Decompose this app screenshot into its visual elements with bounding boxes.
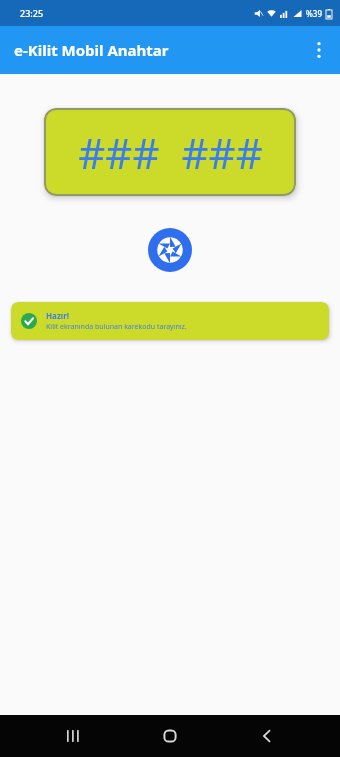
staticText: Hazır!: [46, 310, 70, 321]
staticText: 23:25: [20, 7, 44, 19]
button[interactable]: ### ###: [44, 108, 296, 196]
button[interactable]: Scan QR code: [148, 228, 192, 272]
staticText: Kilit ekranında bulunan karekodu tarayın…: [46, 322, 187, 332]
button[interactable]: Home: [147, 715, 193, 757]
staticText: e-Kilit Mobil Anahtar: [14, 40, 169, 60]
button[interactable]: Hazır!: [11, 302, 329, 340]
button[interactable]: Back: [244, 715, 290, 757]
button[interactable]: More options: [298, 29, 340, 71]
staticText: ### ###: [78, 124, 263, 181]
staticText: %39: [306, 8, 322, 19]
button[interactable]: Recent apps: [51, 715, 97, 757]
